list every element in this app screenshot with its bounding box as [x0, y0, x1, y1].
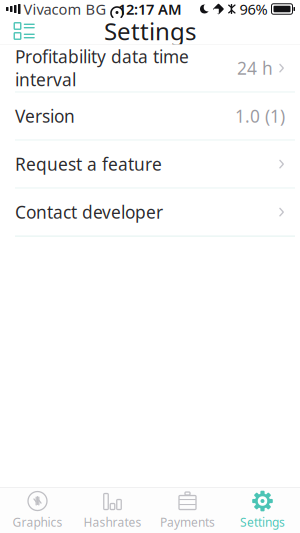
staticText: Vivacom BG: [23, 0, 106, 19]
staticText: 1.0 (1): [235, 105, 285, 128]
staticText: Request a feature: [15, 153, 162, 176]
staticText: Settings: [104, 15, 196, 47]
button[interactable]: Request a feature: [0, 141, 300, 189]
staticText: Graphics: [12, 514, 62, 530]
button[interactable]: Settings: [225, 485, 300, 533]
staticText: Settings: [240, 514, 285, 530]
button[interactable]: Profitability data time interval: [0, 45, 300, 93]
button[interactable]: Version: [0, 93, 300, 141]
button[interactable]: Payments: [150, 485, 225, 533]
staticText: 96%: [239, 0, 267, 19]
staticText: Version: [15, 105, 75, 128]
staticText: Contact developer: [15, 201, 163, 224]
staticText: 12:17 AM: [118, 0, 182, 19]
button[interactable]: Contact developer: [0, 189, 300, 237]
staticText: Profitability data time interval: [15, 45, 189, 91]
staticText: Payments: [160, 514, 215, 530]
button[interactable]: Hashrates: [75, 485, 150, 533]
button[interactable]: Graphics: [0, 485, 75, 533]
button[interactable]: Coins list: [7, 18, 42, 44]
staticText: 24 h: [237, 57, 273, 80]
staticText: Hashrates: [83, 514, 141, 530]
